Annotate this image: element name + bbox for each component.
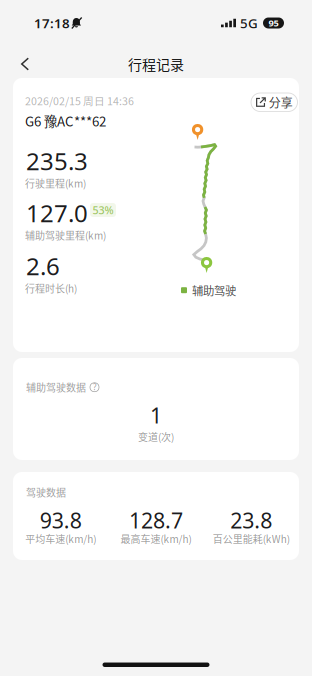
staticText: 分享 bbox=[269, 94, 293, 111]
staticText: 2.6 bbox=[26, 250, 60, 282]
staticText: 5G bbox=[240, 14, 258, 32]
staticText: 行驶里程(km) bbox=[25, 176, 86, 190]
staticText: 17:18 bbox=[34, 14, 70, 32]
staticText: ? bbox=[93, 382, 96, 392]
staticText: 百公里能耗(kWh) bbox=[213, 531, 290, 546]
staticText: 127.0 bbox=[26, 197, 88, 229]
staticText: 变道(次) bbox=[138, 429, 174, 444]
staticText: 辅助驾驶 bbox=[192, 282, 236, 298]
staticText: G6 豫AC***62 bbox=[25, 111, 106, 130]
staticText: 23.8 bbox=[230, 506, 272, 534]
staticText: 128.7 bbox=[129, 506, 183, 534]
staticText: 53% bbox=[92, 203, 113, 217]
staticText: 2026/02/15 周日 14:36 bbox=[25, 93, 134, 108]
staticText: 最高车速(km/h) bbox=[120, 531, 191, 546]
staticText: 行程记录 bbox=[128, 54, 184, 74]
staticText: 95 bbox=[268, 17, 278, 29]
staticText: 93.8 bbox=[40, 506, 82, 534]
staticText: 辅助驾驶里程(km) bbox=[25, 228, 106, 242]
button[interactable]: 分享 bbox=[251, 93, 297, 111]
staticText: 平均车速(km/h) bbox=[25, 531, 96, 546]
staticText: 辅助驾驶数据 bbox=[26, 380, 86, 394]
button[interactable]: 返回 bbox=[11, 50, 39, 78]
staticText: 1 bbox=[150, 401, 162, 429]
staticText: 驾驶数据 bbox=[26, 485, 66, 499]
staticText: 235.3 bbox=[26, 145, 88, 177]
staticText: 行程时长(h) bbox=[25, 281, 77, 295]
